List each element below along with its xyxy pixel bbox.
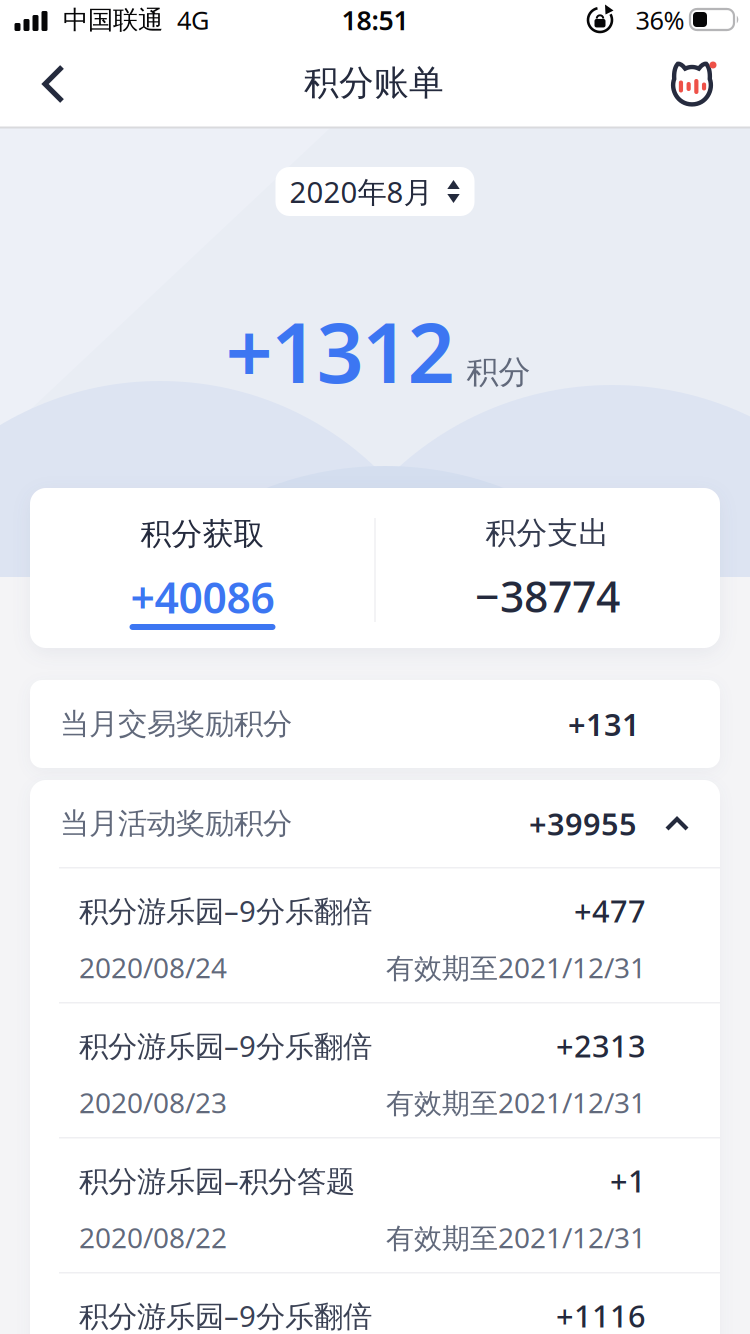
- staticText: 有效期至2021/12/31: [386, 1084, 646, 1121]
- staticText: 2020/08/24: [79, 949, 227, 986]
- button[interactable]: 积分获取: [30, 488, 375, 648]
- staticText: +2313: [556, 1025, 646, 1066]
- staticText: 2020/08/23: [79, 1084, 227, 1121]
- staticText: +39955: [529, 803, 637, 844]
- staticText: +1116: [556, 1295, 646, 1334]
- staticText: 有效期至2021/12/31: [386, 949, 646, 986]
- staticText: 中国联通: [63, 4, 163, 35]
- staticText: +40086: [130, 569, 274, 625]
- staticText: 当月活动奖励积分: [60, 805, 292, 841]
- button[interactable]: 当月活动奖励积分: [30, 780, 720, 867]
- button[interactable]: 积分支出: [375, 488, 720, 648]
- staticText: 有效期至2021/12/31: [386, 1219, 646, 1256]
- staticText: 18:51: [341, 2, 408, 38]
- staticText: 积分游乐园–积分答题: [79, 1161, 355, 1200]
- staticText: 积分游乐园–9分乐翻倍: [79, 1296, 372, 1334]
- button[interactable]: 2020年8月: [275, 167, 474, 216]
- staticText: +1: [610, 1160, 646, 1201]
- staticText: +1312: [225, 296, 454, 406]
- button[interactable]: Customer service: [660, 52, 724, 116]
- staticText: 积分游乐园–9分乐翻倍: [79, 1026, 372, 1065]
- staticText: 积分支出: [485, 514, 609, 552]
- button[interactable]: 当月交易奖励积分: [30, 680, 720, 768]
- staticText: +477: [574, 890, 646, 931]
- staticText: 4G: [177, 3, 209, 37]
- staticText: 36%: [635, 3, 684, 37]
- staticText: 2020年8月: [289, 172, 432, 211]
- staticText: +131: [568, 704, 640, 744]
- button[interactable]: Back: [19, 49, 89, 119]
- staticText: 积分获取: [140, 515, 264, 553]
- staticText: 积分账单: [304, 62, 444, 104]
- staticText: 当月交易奖励积分: [60, 706, 292, 742]
- staticText: 积分: [466, 353, 530, 392]
- staticText: 积分游乐园–9分乐翻倍: [79, 891, 372, 930]
- staticText: 2020/08/22: [79, 1219, 227, 1256]
- staticText: −38774: [475, 568, 620, 624]
